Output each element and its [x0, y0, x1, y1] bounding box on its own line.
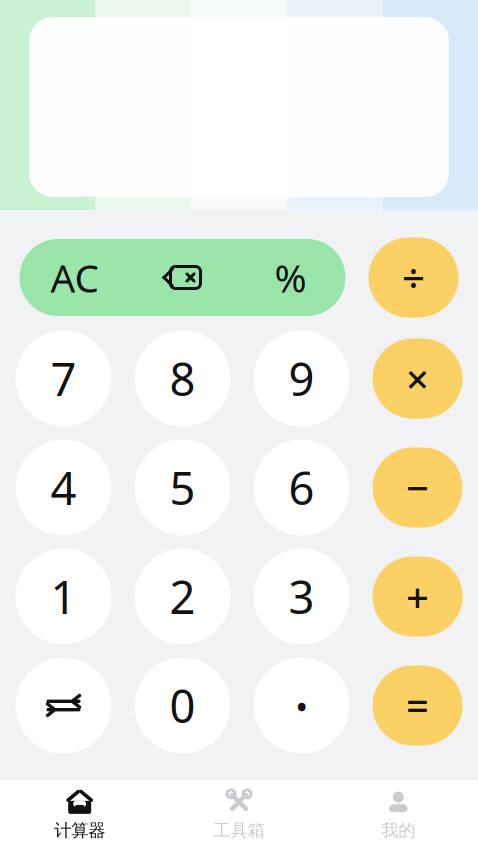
button[interactable]: Divide — [368, 237, 458, 317]
staticText: 2 — [169, 566, 195, 627]
staticText: ÷ — [402, 251, 425, 304]
button[interactable]: Add — [372, 556, 462, 636]
staticText: % — [274, 252, 306, 303]
staticText: − — [406, 461, 429, 514]
staticText: 我的 — [381, 820, 415, 841]
staticText: 工具箱 — [213, 820, 264, 841]
button[interactable]: AC — [20, 239, 128, 316]
staticText: 6 — [288, 457, 314, 518]
button[interactable]: 4 — [15, 439, 111, 535]
button[interactable]: Backspace — [128, 239, 236, 316]
staticText: 8 — [169, 348, 195, 409]
button[interactable]: Multiply — [372, 338, 462, 418]
staticText: = — [406, 679, 429, 732]
button[interactable]: Subtract — [372, 447, 462, 527]
staticText: 计算器 — [54, 820, 105, 841]
button[interactable]: 3 — [253, 548, 349, 644]
staticText: 5 — [169, 457, 195, 518]
button[interactable]: 2 — [134, 548, 230, 644]
button[interactable]: 6 — [253, 439, 349, 535]
button[interactable]: 7 — [15, 330, 111, 426]
button[interactable]: 我的 — [319, 780, 478, 850]
staticText: 7 — [50, 348, 76, 409]
staticText: 0 — [169, 675, 195, 736]
staticText: 4 — [50, 457, 76, 518]
staticText: + — [406, 570, 429, 623]
staticText: 9 — [288, 348, 314, 409]
staticText: AC — [50, 252, 98, 303]
staticText: × — [406, 352, 429, 405]
button[interactable]: Equals — [372, 665, 462, 745]
staticText: · — [293, 665, 309, 746]
button[interactable]: 工具箱 — [159, 780, 319, 850]
button[interactable]: 5 — [134, 439, 230, 535]
button[interactable]: 8 — [134, 330, 230, 426]
staticText: 3 — [288, 566, 314, 627]
button[interactable]: 计算器 — [0, 780, 159, 850]
button[interactable]: · — [253, 657, 349, 753]
button[interactable]: 0 — [134, 657, 230, 753]
button[interactable]: Swap — [15, 657, 111, 753]
staticText: 1 — [50, 566, 76, 627]
button[interactable]: % — [236, 239, 344, 316]
button[interactable]: 1 — [15, 548, 111, 644]
button[interactable]: 9 — [253, 330, 349, 426]
